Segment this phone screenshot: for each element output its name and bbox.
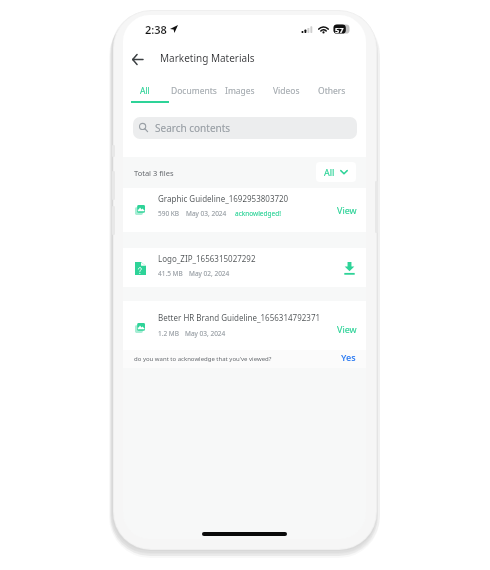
button[interactable]: Videos <box>261 76 311 106</box>
staticText: 2:38 <box>145 22 167 37</box>
staticText: 590 KB <box>158 209 180 218</box>
staticText: Better HR Brand Guideline_1656314792371 <box>158 312 343 323</box>
staticText: Yes <box>341 351 356 363</box>
staticText: View <box>337 323 357 335</box>
staticText: May 03, 2024 <box>186 209 227 218</box>
staticText: All <box>140 85 150 97</box>
button[interactable]: Download <box>339 258 359 278</box>
staticText: Others <box>318 85 346 97</box>
button[interactable]: View <box>333 320 361 338</box>
staticText: 1.2 MB <box>158 329 179 338</box>
staticText: Videos <box>273 85 300 97</box>
staticText: All <box>324 166 335 178</box>
button[interactable]: Better HR Brand Guideline_1656314792371 <box>123 301 366 350</box>
staticText: 41.5 MB <box>158 269 183 278</box>
staticText: Search contents <box>155 121 231 135</box>
staticText: View <box>337 204 357 216</box>
staticText: acknowledged! <box>235 209 281 218</box>
button[interactable]: Images <box>215 76 265 106</box>
button[interactable]: Search contents <box>133 117 357 139</box>
button[interactable]: Back <box>123 45 151 73</box>
button[interactable]: View <box>333 201 361 219</box>
button[interactable]: All <box>123 76 170 106</box>
staticText: Marketing Materials <box>160 51 255 65</box>
button[interactable]: Others <box>307 76 357 106</box>
button[interactable]: Yes <box>334 350 362 364</box>
staticText: Images <box>225 85 255 97</box>
staticText: Total 3 files <box>134 168 174 178</box>
staticText: May 03, 2024 <box>185 329 226 338</box>
staticText: Graphic Guideline_1692953803720 <box>158 193 343 204</box>
staticText: May 02, 2024 <box>189 269 230 278</box>
staticText: Documents <box>171 85 217 97</box>
button[interactable]: Graphic Guideline_1692953803720 <box>123 188 366 232</box>
staticText: do you want to acknowledge that you've v… <box>134 355 272 363</box>
button[interactable]: All <box>316 162 356 182</box>
button[interactable]: Logo_ZIP_1656315027292 <box>123 248 366 287</box>
button[interactable]: Documents <box>169 76 219 106</box>
staticText: Logo_ZIP_1656315027292 <box>158 253 343 264</box>
staticText: 57 <box>335 25 344 35</box>
